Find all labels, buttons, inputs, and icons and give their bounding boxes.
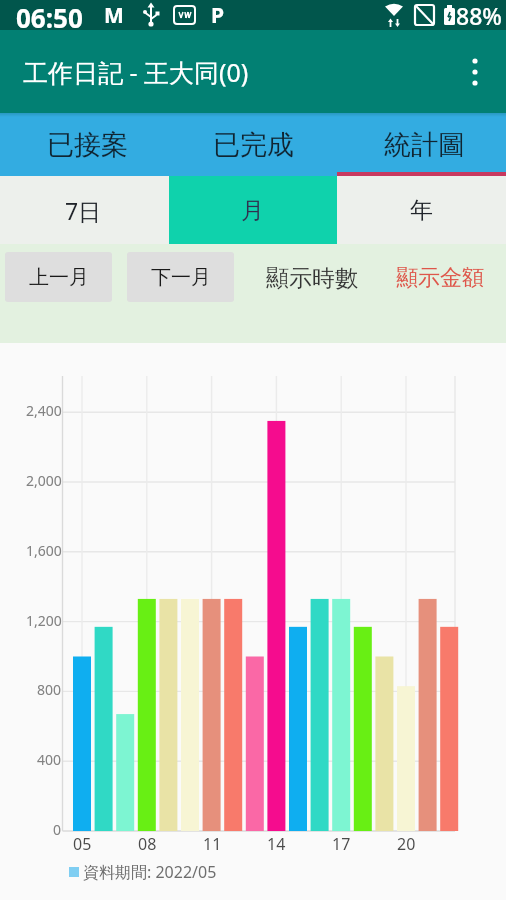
staticText: 7日	[65, 195, 102, 226]
staticText: 20	[397, 833, 416, 853]
staticText: 上一月	[29, 265, 89, 290]
staticText: M	[104, 1, 124, 30]
staticText: 06:50	[16, 0, 83, 30]
button[interactable]: 月	[168, 176, 336, 244]
staticText: 統計圖	[384, 128, 465, 162]
staticText: 已接案	[47, 128, 128, 162]
staticText: 年	[410, 196, 433, 225]
staticText: 14	[267, 833, 286, 853]
staticText: 2,400	[26, 401, 62, 420]
button[interactable]: 下一月	[127, 252, 234, 302]
staticText: 17	[332, 833, 351, 853]
staticText: 0	[53, 820, 62, 839]
staticText: 顯示時數	[266, 264, 358, 293]
staticText: 1,600	[26, 541, 62, 560]
staticText: 2,000	[26, 471, 62, 490]
staticText: 11	[203, 833, 222, 853]
button[interactable]: 顯示金額	[380, 253, 500, 303]
button[interactable]: 上一月	[5, 252, 112, 302]
staticText: 400	[37, 750, 62, 769]
staticText: 已完成	[213, 128, 294, 162]
staticText: 顯示金額	[396, 264, 484, 292]
staticText: 05	[73, 833, 92, 853]
staticText: 資料期間: 2022/05	[83, 861, 217, 883]
staticText: 88%	[456, 0, 502, 30]
button[interactable]	[460, 55, 490, 91]
staticText: 08	[138, 833, 157, 853]
button[interactable]: 已接案	[3, 115, 172, 175]
staticText: 1,200	[26, 611, 62, 630]
staticText: 800	[37, 680, 62, 699]
button[interactable]: 年	[337, 176, 505, 244]
button[interactable]: 已完成	[169, 115, 338, 175]
staticText: 工作日記 - 王大同(0)	[23, 55, 249, 89]
button[interactable]: 統計圖	[340, 115, 506, 175]
staticText: 月	[241, 196, 264, 225]
staticText: P	[211, 1, 225, 30]
button[interactable]: 顯示時數	[252, 253, 372, 303]
button[interactable]: 7日	[0, 176, 167, 244]
staticText: 下一月	[151, 265, 211, 290]
